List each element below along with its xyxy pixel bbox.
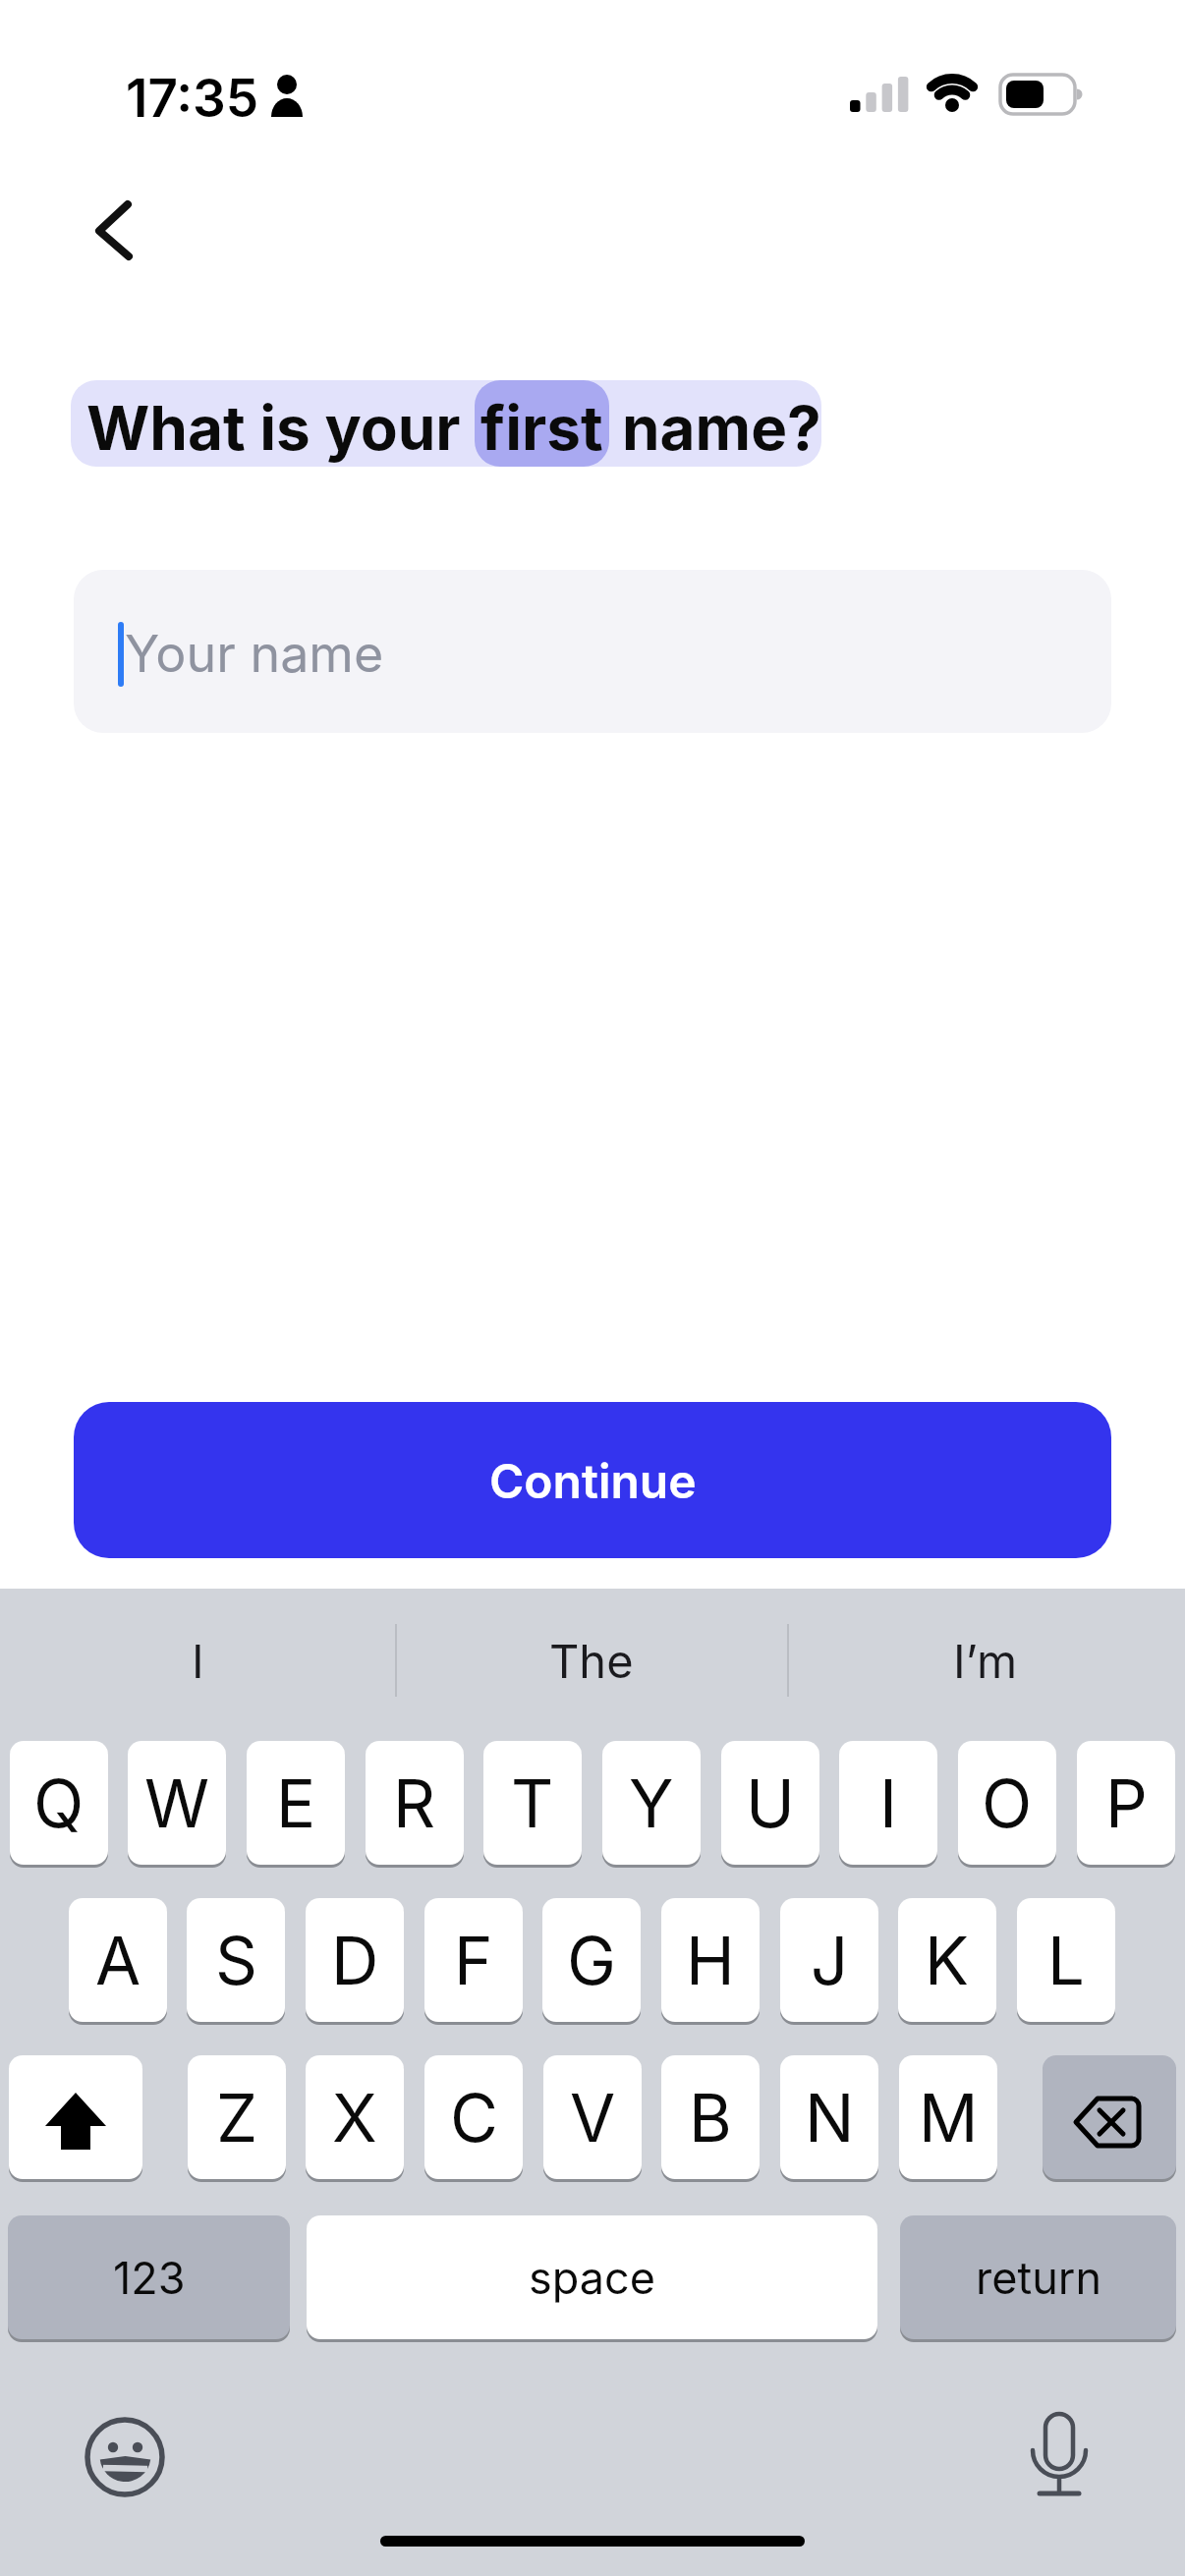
staticText: 123 bbox=[113, 2251, 186, 2304]
staticText: I bbox=[192, 1633, 204, 1689]
button[interactable]: I bbox=[20, 1621, 375, 1700]
staticText: V bbox=[570, 2078, 616, 2157]
button[interactable]: Z bbox=[188, 2055, 286, 2179]
staticText: U bbox=[746, 1764, 795, 1843]
staticText: O bbox=[982, 1764, 1033, 1843]
staticText: A bbox=[95, 1921, 141, 2000]
button[interactable]: X bbox=[306, 2055, 404, 2179]
staticText: L bbox=[1047, 1921, 1085, 2000]
staticText: I’m bbox=[953, 1633, 1018, 1689]
button[interactable]: I bbox=[839, 1741, 937, 1865]
button[interactable]: T bbox=[483, 1741, 582, 1865]
staticText: K bbox=[925, 1921, 970, 2000]
staticText: What is your bbox=[86, 391, 461, 465]
button[interactable]: space bbox=[307, 2215, 877, 2339]
button[interactable]: R bbox=[366, 1741, 464, 1865]
button[interactable]: M bbox=[899, 2055, 997, 2179]
staticText: X bbox=[332, 2078, 377, 2157]
button[interactable]: C bbox=[424, 2055, 523, 2179]
staticText: F bbox=[454, 1921, 493, 2000]
button[interactable]: P bbox=[1077, 1741, 1175, 1865]
button[interactable]: H bbox=[661, 1898, 760, 2022]
staticText: Y bbox=[629, 1764, 674, 1843]
staticText: P bbox=[1105, 1764, 1148, 1843]
button[interactable]: E bbox=[247, 1741, 345, 1865]
staticText: B bbox=[689, 2078, 732, 2157]
button[interactable]: Y bbox=[602, 1741, 701, 1865]
staticText: Your name bbox=[125, 623, 384, 685]
button[interactable]: Q bbox=[10, 1741, 108, 1865]
button[interactable]: A bbox=[69, 1898, 167, 2022]
button[interactable]: S bbox=[187, 1898, 285, 2022]
staticText: C bbox=[450, 2078, 498, 2157]
staticText: T bbox=[511, 1764, 554, 1843]
button[interactable]: 123 bbox=[8, 2215, 290, 2339]
button[interactable]: Your name bbox=[74, 570, 1111, 733]
button[interactable] bbox=[9, 2055, 142, 2179]
staticText: Z bbox=[216, 2078, 258, 2157]
button[interactable]: G bbox=[542, 1898, 641, 2022]
button[interactable]: I’m bbox=[808, 1621, 1163, 1700]
button[interactable] bbox=[1043, 2055, 1176, 2179]
staticText: G bbox=[567, 1921, 616, 2000]
button[interactable]: J bbox=[780, 1898, 878, 2022]
button[interactable]: N bbox=[780, 2055, 878, 2179]
button[interactable]: return bbox=[900, 2215, 1176, 2339]
staticText: M bbox=[919, 2078, 979, 2157]
staticText: D bbox=[331, 1921, 379, 2000]
button[interactable]: W bbox=[128, 1741, 226, 1865]
staticText: first bbox=[480, 391, 603, 465]
staticText: The bbox=[549, 1633, 634, 1689]
staticText: H bbox=[686, 1921, 735, 2000]
staticText: space bbox=[529, 2251, 655, 2304]
button[interactable]: D bbox=[306, 1898, 404, 2022]
staticText: S bbox=[215, 1921, 257, 2000]
button[interactable]: The bbox=[414, 1621, 769, 1700]
button[interactable]: Continue bbox=[74, 1402, 1111, 1558]
staticText: I bbox=[879, 1764, 897, 1843]
staticText: Q bbox=[33, 1764, 85, 1843]
button[interactable]: K bbox=[898, 1898, 996, 2022]
button[interactable]: L bbox=[1017, 1898, 1115, 2022]
staticText: E bbox=[276, 1764, 316, 1843]
staticText: Continue bbox=[489, 1452, 697, 1509]
button[interactable]: U bbox=[721, 1741, 819, 1865]
button[interactable]: V bbox=[543, 2055, 642, 2179]
staticText: return bbox=[976, 2251, 1101, 2304]
staticText: J bbox=[811, 1921, 849, 2000]
staticText: N bbox=[805, 2078, 855, 2157]
staticText: W bbox=[144, 1764, 210, 1843]
button[interactable]: B bbox=[661, 2055, 760, 2179]
button[interactable]: F bbox=[424, 1898, 523, 2022]
staticText: R bbox=[393, 1764, 436, 1843]
button[interactable] bbox=[74, 177, 182, 285]
staticText: 17:35 bbox=[126, 67, 259, 126]
staticText: name? bbox=[622, 391, 821, 465]
button[interactable]: O bbox=[958, 1741, 1056, 1865]
